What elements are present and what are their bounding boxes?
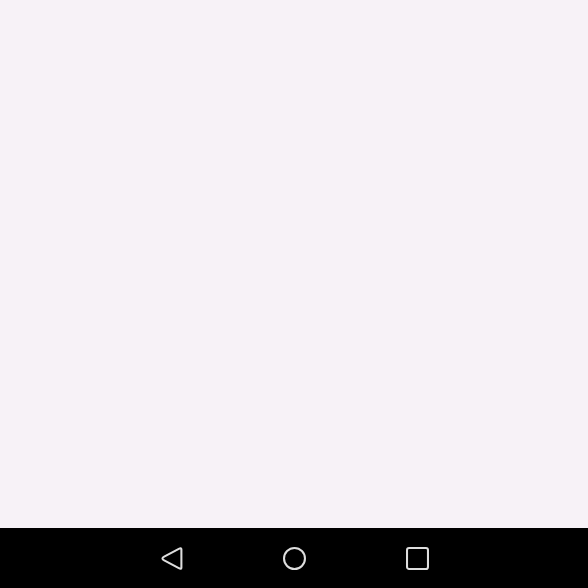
button[interactable]: Home xyxy=(276,540,312,576)
button[interactable]: Back xyxy=(153,540,189,576)
button[interactable]: Recent apps xyxy=(399,540,435,576)
